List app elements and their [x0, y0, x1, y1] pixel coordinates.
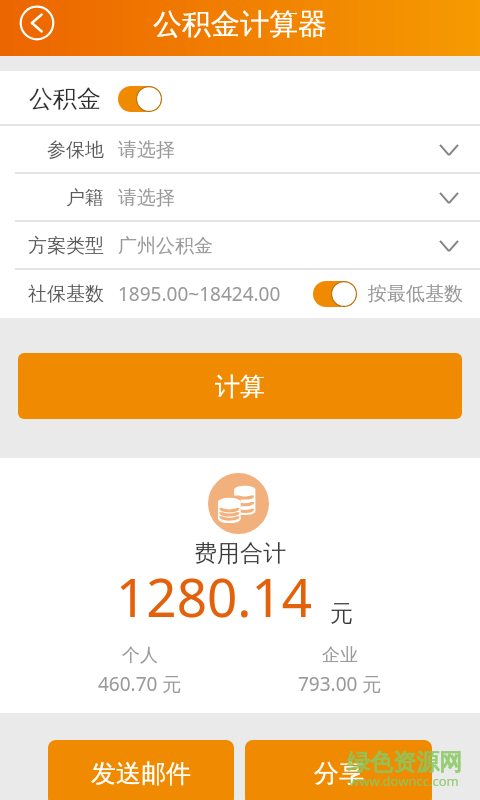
staticText: 广州公积金	[118, 234, 213, 258]
button[interactable]: 公积金	[0, 71, 480, 126]
staticText: 请选择	[118, 138, 175, 162]
button[interactable]: 分享	[245, 740, 432, 800]
staticText: 计算	[215, 371, 265, 402]
staticText: 发送邮件	[91, 758, 191, 789]
button[interactable]: 发送邮件	[48, 740, 234, 800]
staticText: 460.70 元	[98, 671, 182, 697]
staticText: 请选择	[118, 186, 175, 210]
staticText: 绿色资源网	[347, 748, 462, 777]
button[interactable]: 计算	[18, 353, 462, 419]
staticText: 企业	[322, 644, 358, 667]
staticText: 1280.14	[116, 560, 313, 632]
staticText: 方案类型	[28, 234, 104, 258]
staticText: 按最低基数	[368, 282, 463, 306]
button[interactable]: Toggle	[313, 281, 357, 307]
button[interactable]: Back	[19, 5, 55, 41]
staticText: 参保地	[47, 138, 104, 162]
staticText: 公积金计算器	[153, 6, 327, 43]
staticText: 元	[330, 599, 353, 628]
staticText: 户籍	[66, 186, 104, 210]
button[interactable]: 方案类型	[0, 222, 480, 270]
staticText: 个人	[122, 644, 158, 667]
staticText: 分享	[314, 758, 364, 789]
staticText: 793.00 元	[298, 671, 382, 697]
staticText: 公积金	[29, 84, 101, 114]
staticText: 社保基数	[28, 282, 104, 306]
button[interactable]: Toggle	[118, 86, 162, 112]
button[interactable]: 参保地	[0, 126, 480, 174]
staticText: www.downcc.com	[349, 772, 459, 790]
staticText: 费用合计	[194, 539, 286, 568]
staticText: 1895.00~18424.00	[118, 281, 281, 307]
button[interactable]: 户籍	[0, 174, 480, 222]
